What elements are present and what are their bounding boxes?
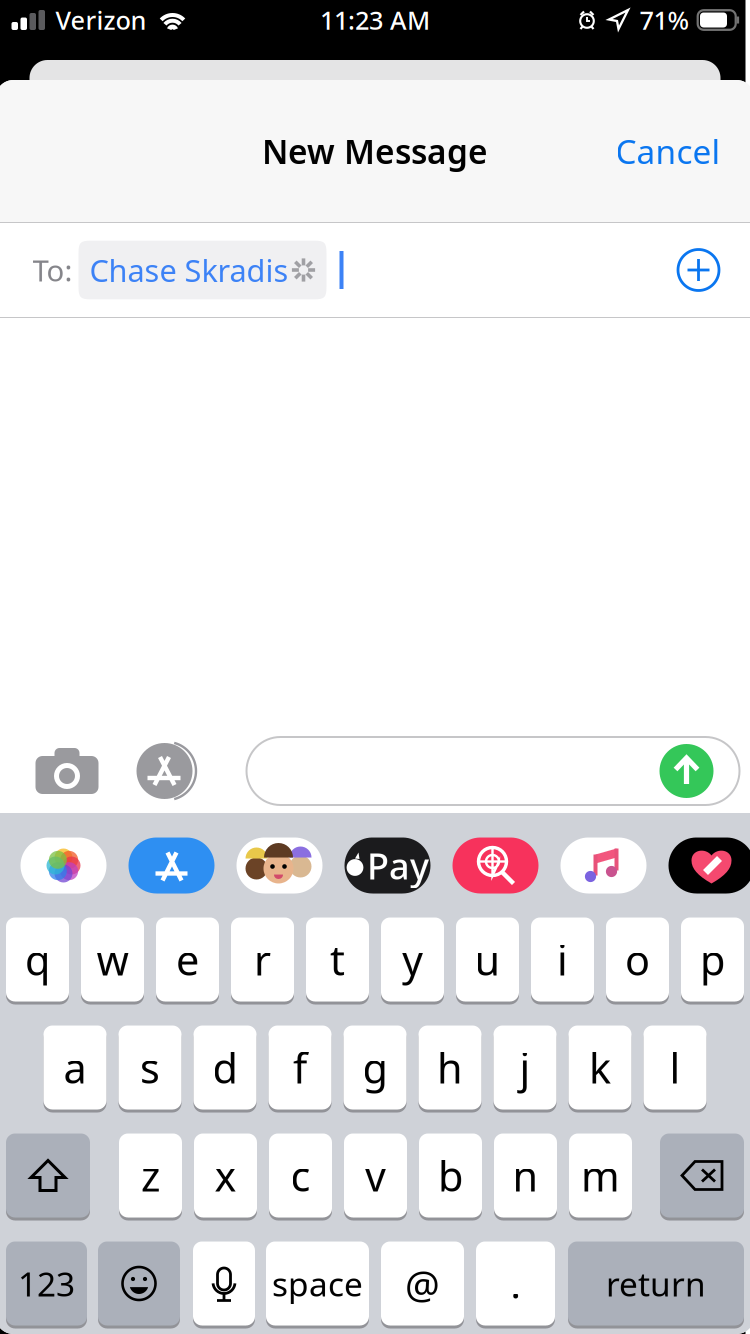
- staticText: Cancel: [615, 129, 720, 173]
- staticText: o: [625, 932, 650, 987]
- button[interactable]: v: [344, 1133, 407, 1220]
- staticText: v: [365, 1148, 386, 1203]
- staticText: g: [362, 1040, 387, 1095]
- button[interactable]: j: [493, 1025, 556, 1112]
- button[interactable]: r: [231, 917, 294, 1004]
- staticText: z: [141, 1148, 160, 1203]
- button[interactable]: s: [118, 1025, 181, 1112]
- button[interactable]: Send: [659, 744, 713, 798]
- staticText: l: [669, 1040, 680, 1095]
- button[interactable]: Apple Pay: [344, 837, 430, 893]
- staticText: New Message: [262, 129, 488, 173]
- staticText: 11:23 AM: [320, 3, 430, 37]
- button[interactable]: .: [476, 1241, 555, 1328]
- button[interactable]: a: [43, 1025, 106, 1112]
- button[interactable]: Photos: [20, 837, 106, 893]
- button[interactable]: Music: [560, 837, 646, 893]
- button[interactable]: m: [569, 1133, 632, 1220]
- button[interactable]: Delete: [660, 1133, 744, 1220]
- button[interactable]: g: [343, 1025, 406, 1112]
- button[interactable]: Shift: [6, 1133, 90, 1220]
- button[interactable]: App Store: [137, 741, 205, 801]
- staticText: .: [510, 1258, 520, 1309]
- button[interactable]: App Store: [128, 837, 214, 893]
- staticText: f: [293, 1040, 307, 1095]
- button[interactable]: l: [643, 1025, 706, 1112]
- staticText: d: [212, 1040, 237, 1095]
- button[interactable]: return: [568, 1241, 744, 1328]
- staticText: To:: [32, 250, 72, 289]
- button[interactable]: Emoji: [98, 1241, 180, 1328]
- staticText: i: [557, 932, 568, 987]
- staticText: k: [589, 1040, 611, 1095]
- button[interactable]: c: [269, 1133, 332, 1220]
- button[interactable]: o: [606, 917, 669, 1004]
- button[interactable]: Chase Skradis: [78, 241, 326, 299]
- button[interactable]: Dictation: [193, 1241, 255, 1328]
- button[interactable]: u: [456, 917, 519, 1004]
- staticText: n: [512, 1148, 538, 1203]
- staticText: b: [438, 1148, 463, 1203]
- button[interactable]: b: [419, 1133, 482, 1220]
- button[interactable]: y: [381, 917, 444, 1004]
- staticText: c: [290, 1148, 310, 1203]
- button[interactable]: Image Search: [452, 837, 538, 893]
- button[interactable]: i: [531, 917, 594, 1004]
- staticText: w: [96, 932, 128, 987]
- button[interactable]: t: [306, 917, 369, 1004]
- staticText: e: [176, 932, 199, 987]
- staticText: 71%: [639, 3, 689, 37]
- button[interactable]: h: [418, 1025, 481, 1112]
- staticText: h: [437, 1040, 463, 1095]
- staticText: return: [606, 1261, 706, 1306]
- button[interactable]: Health: [668, 837, 750, 893]
- button[interactable]: f: [268, 1025, 331, 1112]
- staticText: Chase Skradis: [89, 250, 288, 290]
- staticText: q: [25, 932, 50, 987]
- staticText: Verizon: [55, 3, 146, 37]
- staticText: x: [214, 1148, 236, 1203]
- button[interactable]: Camera: [35, 748, 98, 794]
- button[interactable]: space: [266, 1241, 369, 1328]
- staticText: j: [519, 1040, 530, 1095]
- button[interactable]: Cancel: [598, 113, 737, 189]
- staticText: m: [581, 1148, 620, 1203]
- button[interactable]: p: [681, 917, 744, 1004]
- button[interactable]: w: [81, 917, 144, 1004]
- button[interactable]: d: [193, 1025, 256, 1112]
- button[interactable]: Memoji: [236, 837, 322, 893]
- button[interactable]: e: [156, 917, 219, 1004]
- staticText: 123: [18, 1261, 75, 1306]
- button[interactable]: @: [381, 1241, 464, 1328]
- button[interactable]: 123: [6, 1241, 87, 1328]
- button[interactable]: n: [494, 1133, 557, 1220]
- staticText: r: [254, 932, 271, 987]
- button[interactable]: k: [568, 1025, 631, 1112]
- staticText: @: [405, 1258, 440, 1309]
- staticText: a: [63, 1040, 86, 1095]
- staticText: s: [140, 1040, 160, 1095]
- button[interactable]: z: [119, 1133, 182, 1220]
- staticText: p: [700, 932, 725, 987]
- button[interactable]: q: [6, 917, 69, 1004]
- button[interactable]: Add contact: [676, 248, 720, 292]
- staticText: u: [474, 932, 500, 987]
- button[interactable]: x: [194, 1133, 257, 1220]
- staticText: t: [330, 932, 345, 987]
- staticText: space: [272, 1261, 363, 1306]
- staticText: y: [402, 932, 423, 987]
- staticText: Pay: [367, 842, 429, 889]
